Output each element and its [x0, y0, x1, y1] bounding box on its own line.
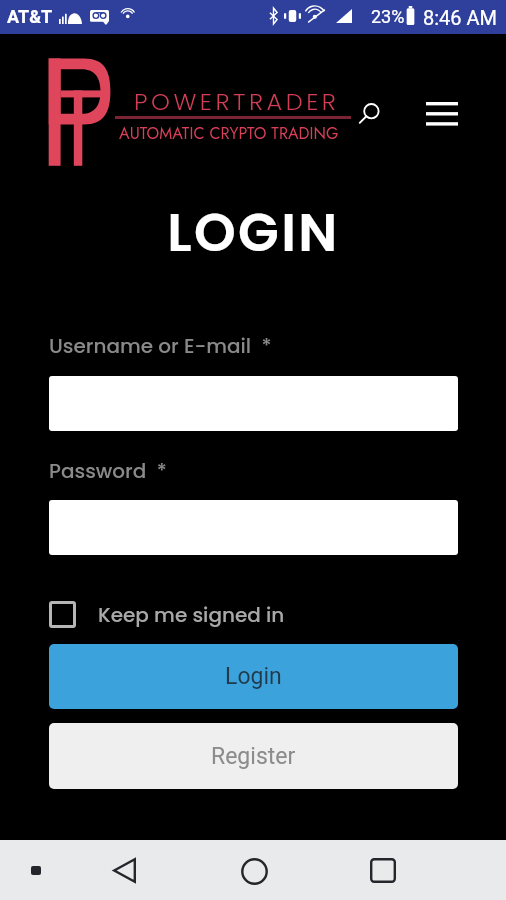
staticText: AUTOMATIC CRYPTO TRADING	[119, 122, 339, 145]
staticText: Keep me signed in	[98, 601, 285, 629]
staticText: Username or E-mail *	[49, 332, 272, 360]
button[interactable]: Recents	[361, 848, 405, 892]
button[interactable]: Home	[232, 849, 276, 893]
staticText: LOGIN	[167, 195, 340, 267]
button[interactable]: Keep me signed in	[49, 598, 285, 631]
button[interactable]: Search	[348, 92, 392, 136]
button[interactable]: Back	[102, 848, 146, 892]
button[interactable]: Menu	[414, 90, 470, 138]
staticText: AT&T	[7, 6, 53, 27]
staticText: Register	[211, 743, 296, 770]
button[interactable]	[49, 376, 458, 431]
button[interactable]	[49, 500, 458, 555]
staticText: Login	[225, 663, 282, 690]
staticText: Password *	[49, 457, 167, 485]
staticText: 8:46 AM	[423, 6, 498, 29]
button[interactable]: Register	[49, 723, 458, 789]
button[interactable]: Login	[49, 644, 458, 709]
staticText: 23%	[371, 6, 405, 27]
staticText: POWERTRADER	[134, 85, 340, 119]
